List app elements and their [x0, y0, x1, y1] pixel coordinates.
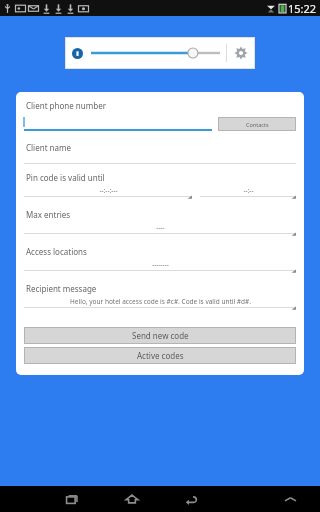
button[interactable]: Back — [172, 486, 211, 512]
staticText: Client name — [26, 142, 72, 153]
button[interactable]: --:--:--- — [24, 185, 192, 201]
button[interactable]: Settings — [227, 37, 255, 69]
staticText: Contacts — [246, 121, 269, 128]
button[interactable]: Hello, your hotel access code is #c#. Co… — [24, 296, 296, 312]
staticText: --:-- — [243, 186, 254, 195]
staticText: -------- — [152, 260, 169, 269]
staticText: Active codes — [137, 350, 184, 361]
staticText: 15:22 — [288, 1, 317, 16]
button[interactable]: Expand — [273, 486, 308, 512]
button[interactable]: Active codes — [24, 347, 296, 364]
button[interactable]: ---- — [24, 222, 296, 238]
button[interactable]: Send new code — [24, 327, 296, 344]
staticText: Access locations — [26, 246, 87, 257]
staticText: Hello, your hotel access code is #c#. Co… — [70, 297, 251, 306]
staticText: --:--:--- — [99, 186, 118, 195]
button[interactable] — [24, 116, 212, 129]
button[interactable]: Client name — [24, 142, 296, 164]
button[interactable] — [91, 42, 220, 64]
staticText: Client phone number — [26, 100, 106, 111]
button[interactable]: -------- — [24, 259, 296, 275]
staticText: Max entries — [26, 209, 71, 220]
button[interactable]: --:-- — [200, 185, 296, 201]
button[interactable]: Home — [112, 486, 151, 512]
other: Info — [72, 48, 83, 59]
staticText: ---- — [156, 223, 165, 232]
staticText: Send new code — [132, 330, 189, 341]
staticText: Recipient message — [26, 283, 97, 294]
button[interactable]: Contacts — [218, 117, 296, 131]
button[interactable]: Recents — [52, 486, 91, 512]
staticText: Pin code is valid until — [26, 172, 105, 183]
